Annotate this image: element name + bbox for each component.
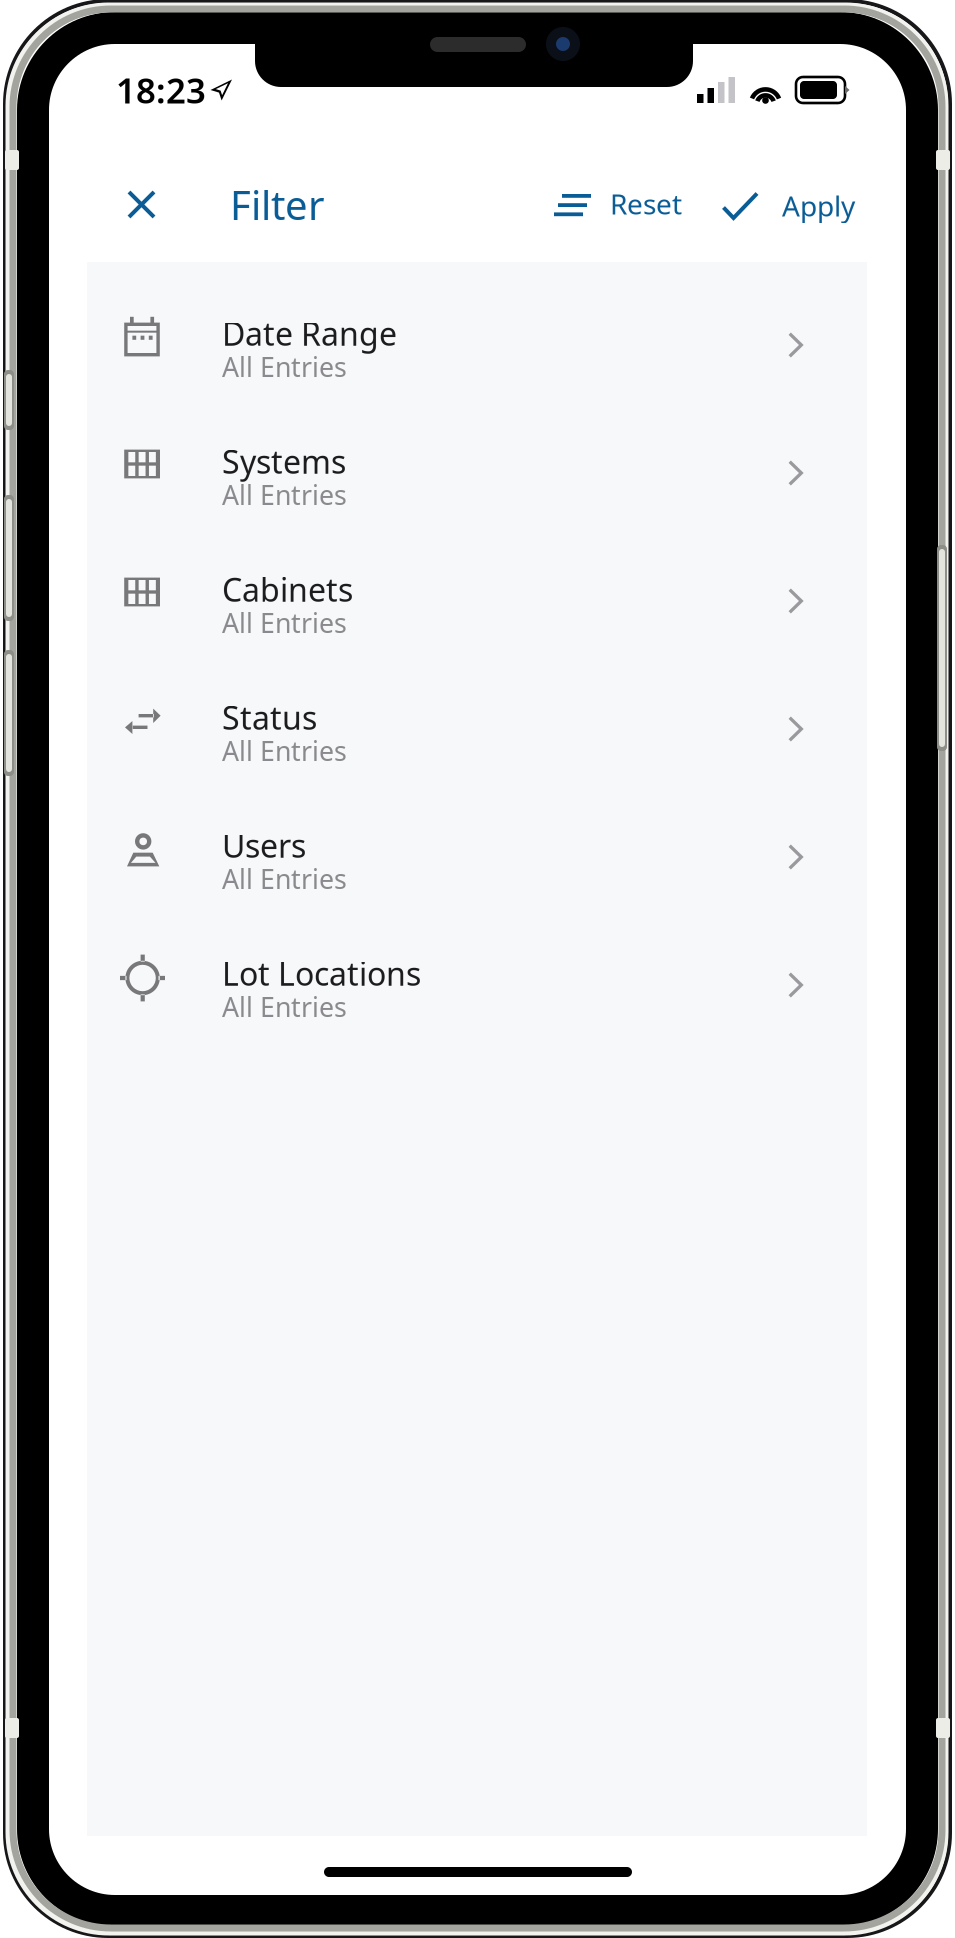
- staticText: Lot Locations: [222, 952, 421, 994]
- staticText: All Entries: [222, 861, 347, 896]
- staticText: All Entries: [222, 477, 347, 512]
- button[interactable]: Apply: [722, 167, 856, 243]
- staticText: Users: [222, 824, 306, 866]
- staticText: Systems: [222, 440, 346, 482]
- button[interactable]: Date Range: [87, 276, 867, 404]
- button[interactable]: Status: [87, 660, 867, 788]
- staticText: Date Range: [222, 312, 397, 354]
- staticText: All Entries: [222, 349, 347, 384]
- button[interactable]: Cabinets: [87, 532, 867, 660]
- button[interactable]: Systems: [87, 404, 867, 532]
- staticText: Status: [222, 696, 317, 738]
- button[interactable]: Lot Locations: [87, 916, 867, 1044]
- button[interactable]: Reset: [554, 167, 694, 243]
- staticText: All Entries: [222, 989, 347, 1024]
- staticText: Filter: [230, 178, 325, 231]
- staticText: Cabinets: [222, 568, 353, 610]
- button[interactable]: Users: [87, 788, 867, 916]
- staticText: All Entries: [222, 605, 347, 640]
- button[interactable]: Close: [105, 168, 178, 241]
- staticText: Reset: [610, 185, 682, 222]
- staticText: All Entries: [222, 733, 347, 768]
- staticText: Apply: [782, 187, 855, 224]
- staticText: 18:23: [116, 67, 206, 113]
